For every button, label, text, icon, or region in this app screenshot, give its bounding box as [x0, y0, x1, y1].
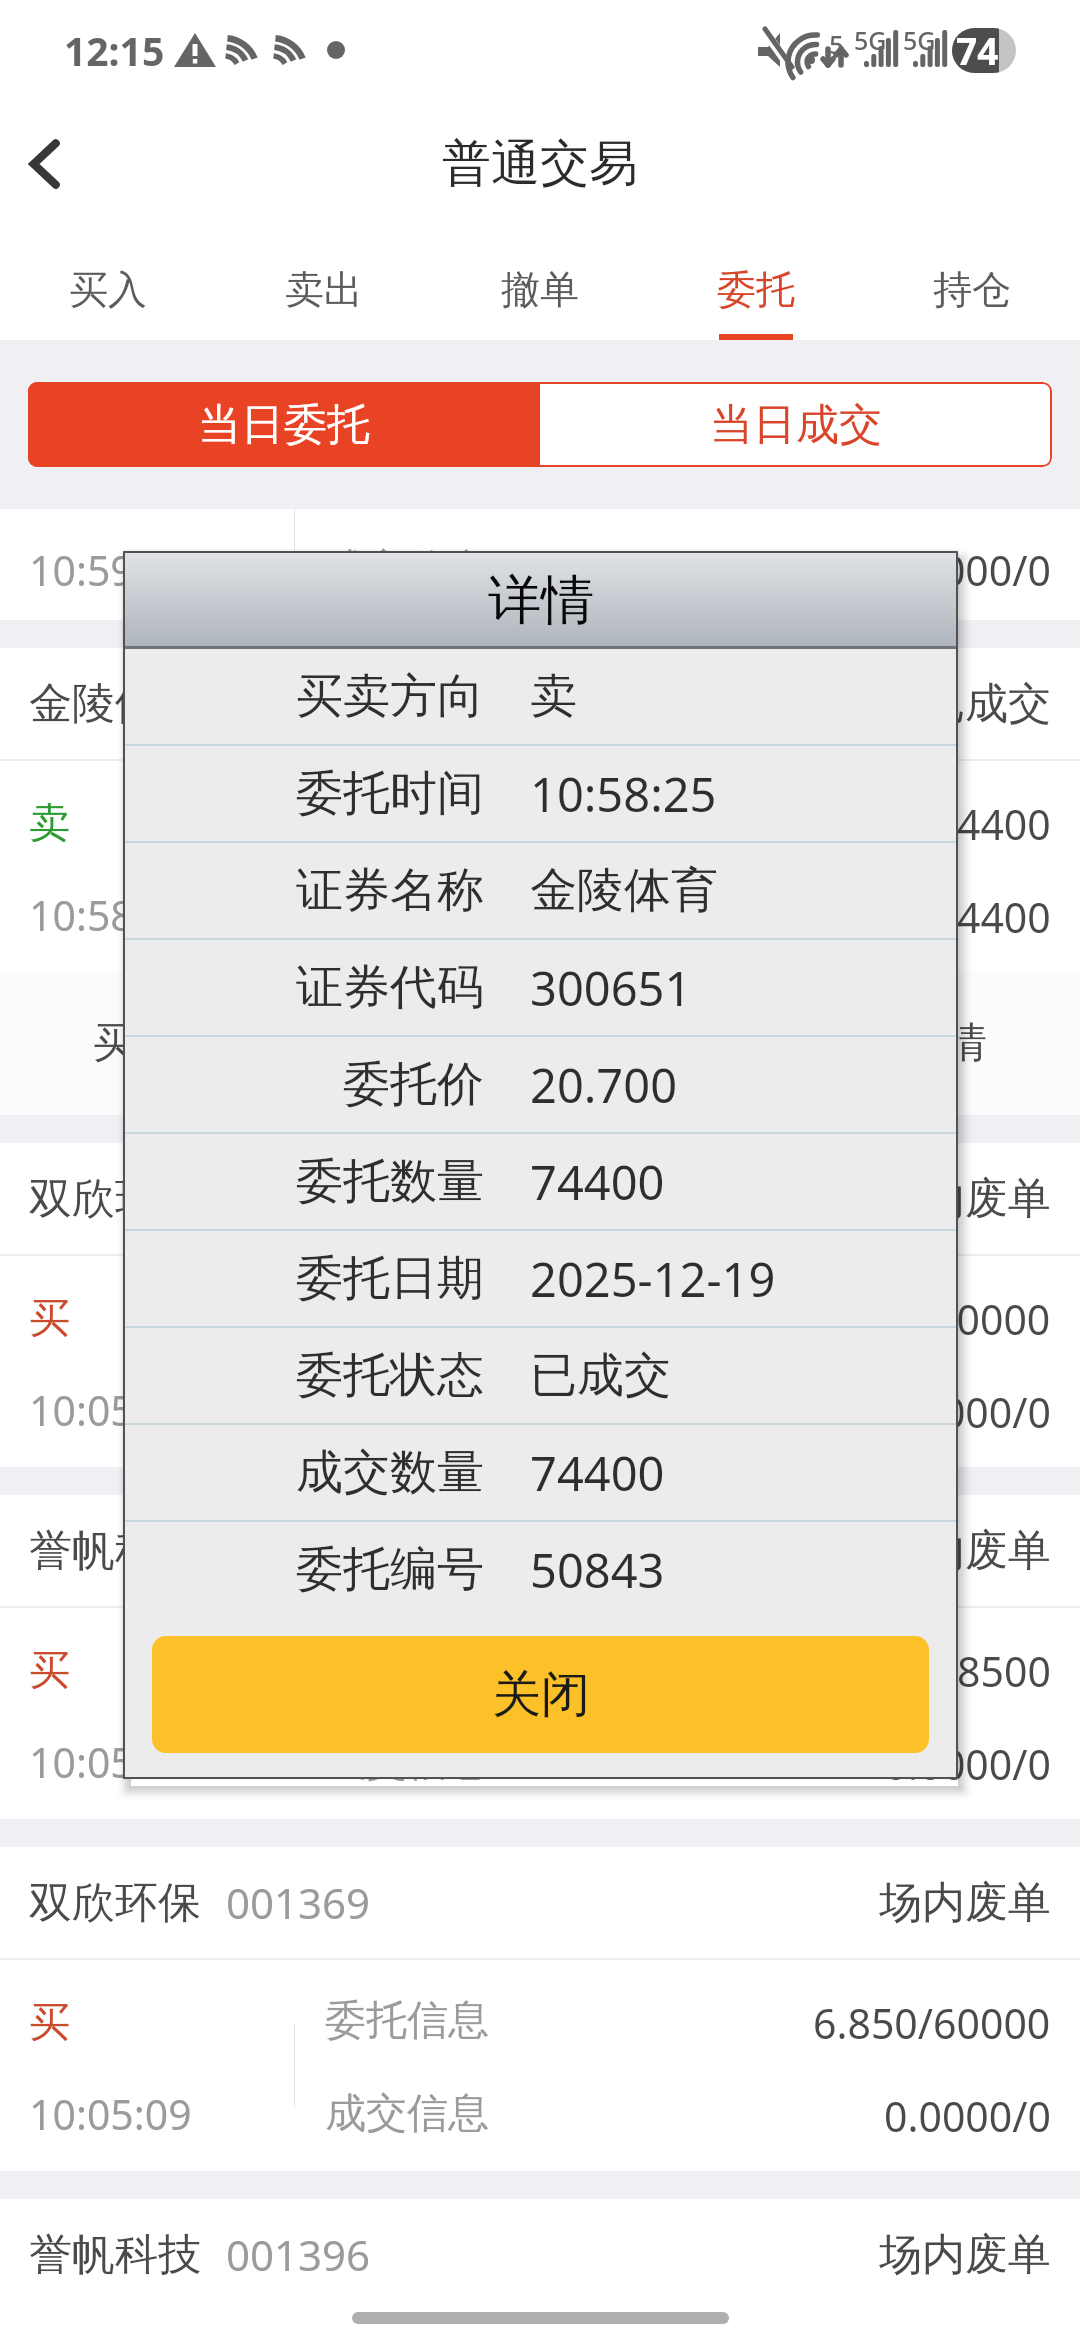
staticText: 场内废单	[879, 1876, 1051, 1930]
staticText: 买入	[69, 265, 147, 314]
staticText: 誉帆科技	[29, 1524, 201, 1578]
staticText: 5G	[854, 23, 887, 57]
button[interactable]: 当日成交	[540, 382, 1052, 467]
staticText: 10:58:25	[29, 887, 192, 943]
button[interactable]: 双欣环保	[29, 1143, 1051, 1254]
staticText: 001396	[226, 2226, 371, 2283]
button[interactable]: 卖	[0, 761, 1080, 972]
staticText: 001369	[226, 1170, 371, 1227]
staticText: 场内废单	[879, 1172, 1051, 1226]
staticText: 委托日期	[296, 1249, 484, 1308]
button[interactable]: 买入	[0, 230, 216, 340]
staticText: 5G	[903, 23, 936, 57]
staticText: 证券名称	[296, 861, 484, 920]
button[interactable]: 关闭	[152, 1636, 929, 1753]
button[interactable]: 委托	[648, 230, 864, 340]
staticText: 双欣环保	[29, 1876, 201, 1930]
button[interactable]: 誉帆科技	[29, 2199, 1051, 2310]
button[interactable]: 当日委托	[28, 382, 540, 467]
staticText: 7.890/8500	[837, 1643, 1051, 1699]
button[interactable]: 持仓	[864, 230, 1080, 340]
staticText: 卖出	[363, 1017, 447, 1070]
staticText: 10:05:09	[29, 1734, 192, 1790]
button[interactable]: 买	[0, 1608, 1080, 1819]
staticText: 买	[29, 1997, 70, 2049]
staticText: 委托信息	[325, 2320, 489, 2340]
staticText: 0.0000/0	[884, 2088, 1051, 2144]
button[interactable]: 撤单	[432, 230, 648, 340]
staticText: 已成交	[922, 677, 1051, 731]
staticText: 委托状态	[296, 1346, 484, 1405]
staticText: 买	[29, 1293, 70, 1345]
staticText: 委托信息	[325, 796, 489, 848]
staticText: 10:58:25	[530, 762, 717, 826]
staticText: 买卖方向	[296, 667, 484, 726]
staticText: 场内废单	[879, 1524, 1051, 1578]
staticText: 74	[956, 25, 999, 75]
staticText: 场内废单	[879, 2228, 1051, 2282]
staticText: 关闭	[492, 1664, 590, 1726]
button[interactable]: Back	[0, 116, 96, 212]
staticText: 10:05:09	[29, 2086, 192, 2142]
staticText: 300651	[226, 675, 371, 732]
staticText: 成交信息	[325, 544, 489, 596]
staticText: 持仓	[933, 265, 1011, 314]
staticText: 委托信息	[325, 1291, 489, 1343]
staticText: 委托	[717, 265, 795, 314]
staticText: 74400	[530, 1150, 665, 1214]
staticText: 委托信息	[325, 1995, 489, 2047]
staticText: 已成交	[530, 1346, 671, 1405]
staticText: 成交数量	[296, 1443, 484, 1502]
staticText: 20.700	[530, 1053, 678, 1117]
staticText: 001396	[226, 1522, 371, 1579]
staticText: 0.0000/0	[884, 1384, 1051, 1440]
staticText: 双欣环保	[29, 1172, 201, 1226]
staticText: 成交信息	[325, 1384, 489, 1436]
staticText: 成交信息	[325, 889, 489, 941]
button[interactable]: 买	[0, 2312, 1080, 2340]
staticText: 卖	[29, 798, 70, 850]
button[interactable]: 买	[0, 1960, 1080, 2171]
staticText: 0.0000/0	[884, 1736, 1051, 1792]
staticText: 6.850/60000	[813, 1291, 1051, 1347]
staticText: 20.700/74400	[790, 889, 1051, 945]
staticText: 普通交易	[442, 133, 638, 195]
staticText: 买	[29, 1645, 70, 1697]
staticText: 买入	[93, 1017, 177, 1070]
staticText: 成交信息	[325, 2088, 489, 2140]
staticText: 300651	[530, 956, 692, 1020]
staticText: 卖出	[285, 265, 363, 314]
staticText: 委托编号	[296, 1540, 484, 1599]
button[interactable]: 双欣环保	[29, 1847, 1051, 1958]
staticText: 0.0000/0	[884, 542, 1051, 598]
staticText: 誉帆科技	[29, 2228, 201, 2282]
staticText: 委托数量	[296, 1152, 484, 1211]
button[interactable]: 卖出	[270, 972, 540, 1115]
button[interactable]: 买	[0, 1256, 1080, 1467]
staticText: 6.850/60000	[813, 1995, 1051, 2051]
staticText: 当日委托	[198, 398, 370, 452]
staticText: 成交信息	[325, 1736, 489, 1788]
button[interactable]: 买入	[0, 972, 270, 1115]
staticText: 5	[829, 26, 844, 61]
staticText: 金陵体育	[29, 677, 201, 731]
button[interactable]: 誉帆科技	[29, 1495, 1051, 1606]
staticText: 委托价	[343, 1055, 484, 1114]
button[interactable]: 详情	[810, 972, 1080, 1115]
button[interactable]: 卖出	[216, 230, 432, 340]
staticText: 20.700/74400	[790, 796, 1051, 852]
staticText: 详情	[488, 567, 594, 634]
staticText: 详情	[903, 1017, 987, 1070]
staticText: 当日成交	[710, 398, 882, 452]
button[interactable]: 金陵体育	[29, 648, 1051, 759]
staticText: 12:15	[64, 24, 165, 77]
staticText: 001369	[226, 1874, 371, 1931]
staticText: 卖	[530, 667, 577, 726]
staticText: 50843	[530, 1538, 665, 1602]
staticText: 撤单	[633, 1017, 717, 1070]
button[interactable]: 撤单	[540, 972, 810, 1115]
staticText: 委托时间	[296, 764, 484, 823]
